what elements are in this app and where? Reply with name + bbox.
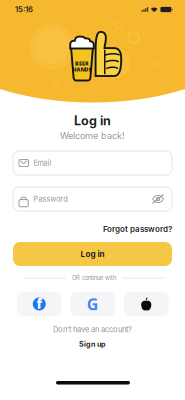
staticText: f (36, 295, 42, 312)
button[interactable]: Continue with Apple (124, 292, 168, 316)
staticText: OR continue with (72, 274, 116, 281)
staticText: HANDS (72, 66, 91, 73)
staticText: G (87, 293, 99, 315)
button[interactable]: Log in (13, 242, 172, 266)
staticText: Log in (74, 113, 111, 128)
staticText: Welcome back! (60, 130, 125, 141)
staticText: Don't have an account? (53, 325, 132, 334)
button[interactable]: Sign up (66, 338, 118, 350)
staticText: Forgot password? (103, 224, 172, 234)
staticText: Email (33, 159, 51, 167)
staticText: 15:16 (15, 5, 33, 14)
staticText: Password (33, 195, 67, 203)
staticText: Log in (80, 249, 104, 259)
staticText: Sign up (79, 340, 106, 348)
button[interactable]: Continue with Google (70, 292, 115, 316)
button[interactable]: Forgot password? (13, 223, 172, 235)
button[interactable]: Continue with Facebook (17, 292, 61, 316)
staticText: BEER (75, 60, 89, 67)
